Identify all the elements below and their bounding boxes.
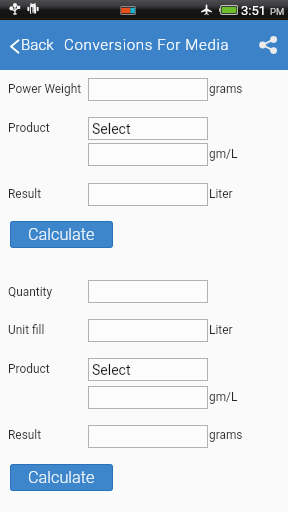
button[interactable]: Calculate — [10, 221, 113, 248]
staticText: Result — [8, 428, 42, 442]
staticText: Power Weight — [8, 82, 82, 96]
button[interactable]: Text input — [88, 143, 208, 166]
staticText: Quantity — [8, 285, 53, 299]
staticText: grams — [209, 82, 243, 96]
staticText: Calculate — [28, 468, 95, 487]
staticText: Product — [8, 362, 50, 376]
staticText: Product — [8, 121, 50, 135]
staticText: 3:51 — [241, 3, 267, 18]
button[interactable]: Text input — [88, 280, 208, 303]
staticText: Calculate — [28, 225, 95, 244]
staticText: grams — [209, 428, 243, 442]
staticText: Result — [8, 187, 42, 201]
button[interactable]: Back — [10, 36, 54, 54]
button[interactable]: Calculate — [10, 464, 113, 491]
staticText: Conversions For Media — [64, 36, 230, 54]
button[interactable]: Share — [253, 30, 283, 60]
button[interactable]: Text input — [88, 319, 208, 342]
staticText: Back — [21, 36, 54, 54]
staticText: Unit fill — [8, 323, 45, 337]
button[interactable]: Text input — [88, 425, 208, 448]
button[interactable]: Text input — [88, 183, 208, 206]
button[interactable]: Text input — [88, 386, 208, 409]
button[interactable]: Select — [88, 117, 208, 140]
staticText: gm/L — [209, 147, 238, 161]
staticText: PM — [270, 6, 285, 17]
staticText: Liter — [209, 187, 233, 201]
button[interactable]: Select — [88, 358, 208, 381]
staticText: Liter — [209, 323, 233, 337]
staticText: Select — [92, 121, 131, 137]
button[interactable]: Text input — [88, 78, 208, 101]
staticText: gm/L — [209, 390, 238, 404]
staticText: Select — [92, 362, 131, 378]
